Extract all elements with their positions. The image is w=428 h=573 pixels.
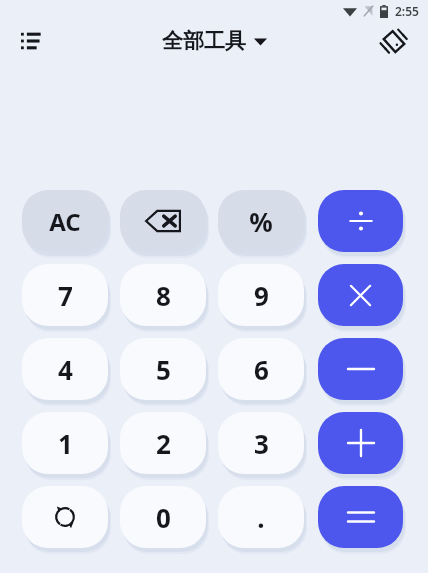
button[interactable]: Divide [318, 190, 403, 252]
staticText: 3 [254, 426, 269, 461]
button[interactable]: AC [22, 190, 108, 252]
button[interactable]: Add [318, 412, 403, 474]
button[interactable]: Multiply [318, 264, 403, 326]
button[interactable]: 1 [22, 412, 108, 474]
button[interactable]: Swap units [22, 486, 108, 548]
button[interactable]: Shake to switch [371, 18, 417, 64]
button[interactable]: 6 [218, 338, 304, 400]
staticText: 0 [156, 500, 171, 535]
button[interactable]: 3 [218, 412, 304, 474]
staticText: 2:55 [395, 3, 419, 19]
button[interactable]: % [218, 190, 304, 252]
button[interactable]: 5 [120, 338, 206, 400]
button[interactable]: 8 [120, 264, 206, 326]
staticText: 6 [254, 352, 269, 387]
button[interactable]: 全部工具 [162, 28, 267, 54]
staticText: 4 [58, 352, 73, 387]
staticText: . [257, 500, 265, 535]
staticText: 5 [156, 352, 171, 387]
staticText: % [249, 204, 273, 239]
button[interactable]: . [218, 486, 304, 548]
staticText: 全部工具 [162, 28, 246, 54]
staticText: 2 [156, 426, 171, 461]
staticText: 8 [156, 278, 171, 313]
button[interactable]: 2 [120, 412, 206, 474]
button[interactable]: Backspace [120, 190, 206, 252]
button[interactable]: 9 [218, 264, 304, 326]
staticText: AC [49, 205, 81, 238]
button[interactable]: Equals [318, 486, 403, 548]
button[interactable]: Subtract [318, 338, 403, 400]
button[interactable]: Menu list [10, 18, 56, 64]
button[interactable]: 0 [120, 486, 206, 548]
button[interactable]: 4 [22, 338, 108, 400]
staticText: 9 [254, 278, 269, 313]
staticText: 1 [58, 426, 73, 461]
button[interactable]: 7 [22, 264, 108, 326]
staticText: 7 [58, 278, 73, 313]
